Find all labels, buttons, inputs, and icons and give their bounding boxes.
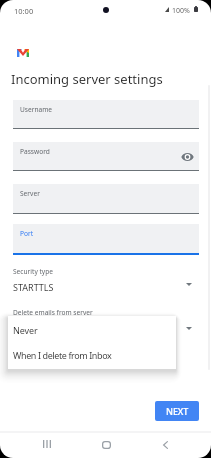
button[interactable]: Recents bbox=[33, 432, 61, 456]
other: Expand Delete emails from server bbox=[186, 327, 192, 330]
staticText: STARTTLS bbox=[13, 281, 54, 293]
staticText: Password bbox=[20, 147, 50, 156]
staticText: NEXT bbox=[166, 405, 189, 417]
staticText: Username bbox=[20, 105, 53, 114]
staticText: 10:00 bbox=[14, 6, 34, 16]
button[interactable]: Port bbox=[13, 224, 199, 255]
other: Expand Security type bbox=[186, 283, 192, 286]
button[interactable]: Home bbox=[92, 432, 120, 456]
staticText: Never bbox=[13, 322, 39, 334]
staticText: 100% bbox=[172, 6, 190, 16]
button[interactable]: NEXT bbox=[155, 401, 199, 421]
other: Show password bbox=[181, 153, 194, 161]
button[interactable]: Security type bbox=[0, 267, 211, 293]
button[interactable]: Password bbox=[13, 142, 199, 171]
staticText: Port bbox=[20, 229, 34, 238]
button[interactable]: Server bbox=[13, 184, 199, 214]
button[interactable]: Never bbox=[8, 316, 176, 343]
staticText: Delete emails from server bbox=[13, 308, 93, 317]
staticText: Server bbox=[20, 189, 40, 198]
button[interactable]: Username bbox=[13, 100, 199, 129]
staticText: Security type bbox=[13, 267, 53, 276]
staticText: Never bbox=[13, 324, 38, 336]
staticText: Incoming server settings bbox=[11, 70, 163, 88]
button[interactable]: Back bbox=[151, 432, 179, 456]
staticText: When I delete from Inbox bbox=[13, 349, 112, 361]
button[interactable]: When I delete from Inbox bbox=[8, 343, 176, 370]
button[interactable]: Delete emails from server bbox=[0, 308, 211, 334]
